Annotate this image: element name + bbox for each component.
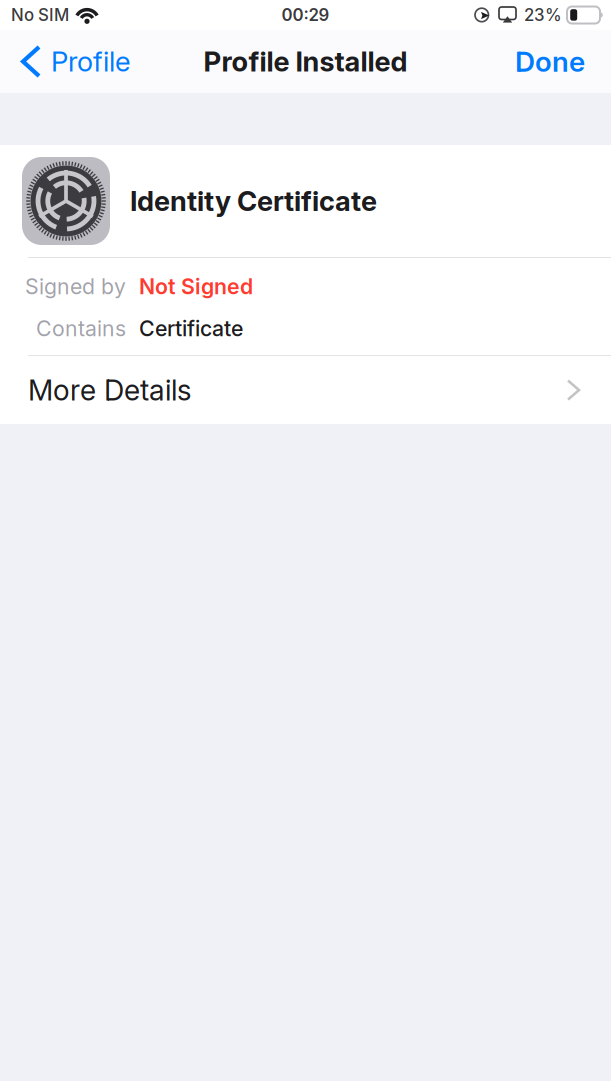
- staticText: Profile Installed: [203, 45, 407, 78]
- staticText: Done: [515, 45, 585, 78]
- staticText: Profile: [51, 45, 131, 78]
- staticText: 23%: [524, 5, 562, 25]
- staticText: Contains: [36, 316, 126, 341]
- staticText: Certificate: [139, 316, 243, 341]
- button[interactable]: More Details: [0, 356, 611, 424]
- button[interactable]: Profile: [0, 34, 143, 89]
- button[interactable]: Done: [503, 34, 611, 89]
- staticText: 00:29: [281, 5, 329, 25]
- staticText: More Details: [28, 373, 191, 407]
- staticText: No SIM: [11, 5, 69, 25]
- staticText: Identity Certificate: [130, 185, 377, 217]
- staticText: Signed by: [25, 274, 126, 299]
- staticText: Not Signed: [139, 274, 253, 299]
